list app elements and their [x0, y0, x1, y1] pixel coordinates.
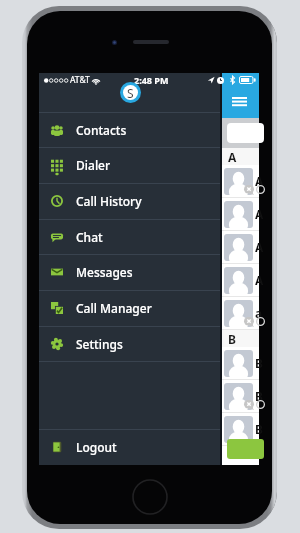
- staticText: A: [255, 173, 259, 189]
- button[interactable]: Contacts: [39, 112, 220, 148]
- staticText: Logout: [76, 439, 117, 455]
- staticText: Call Manager: [76, 300, 152, 316]
- button[interactable]: B: [222, 380, 259, 413]
- button[interactable]: Search contacts: [227, 123, 264, 143]
- button[interactable]: Account logo: [120, 82, 141, 103]
- staticText: B: [255, 421, 259, 437]
- button[interactable]: A: [222, 231, 259, 264]
- staticText: 2:48 PM: [134, 74, 169, 86]
- button[interactable]: Messages: [39, 254, 220, 290]
- staticText: Settings: [76, 336, 123, 352]
- staticText: B: [255, 355, 259, 371]
- button[interactable]: Settings: [39, 326, 220, 362]
- staticText: A: [255, 239, 259, 255]
- staticText: S: [127, 85, 134, 100]
- staticText: Dialer: [76, 157, 111, 173]
- button[interactable]: B: [222, 413, 259, 446]
- staticText: B: [228, 331, 236, 347]
- button[interactable]: Home: [132, 479, 168, 515]
- button[interactable]: A: [222, 264, 259, 297]
- button[interactable]: Logout: [39, 429, 220, 464]
- staticText: B: [255, 388, 259, 404]
- staticText: A: [255, 206, 259, 222]
- button[interactable]: Chat: [39, 219, 220, 255]
- staticText: Messages: [76, 264, 133, 280]
- staticText: Chat: [76, 229, 103, 245]
- staticText: A: [255, 272, 259, 288]
- staticText: AT&T: [70, 74, 90, 86]
- staticText: Contacts: [76, 122, 127, 138]
- button[interactable]: A: [222, 165, 259, 198]
- button[interactable]: A: [222, 198, 259, 231]
- staticText: Call History: [76, 193, 142, 209]
- staticText: A: [228, 149, 237, 165]
- button[interactable]: Open navigation menu: [232, 97, 247, 106]
- button[interactable]: Dialer: [39, 147, 220, 183]
- button[interactable]: Add contact: [227, 439, 264, 459]
- button[interactable]: B: [222, 347, 259, 380]
- button[interactable]: a: [222, 297, 259, 330]
- button[interactable]: Call Manager: [39, 290, 220, 326]
- button[interactable]: Call History: [39, 183, 220, 219]
- staticText: a: [255, 305, 259, 321]
